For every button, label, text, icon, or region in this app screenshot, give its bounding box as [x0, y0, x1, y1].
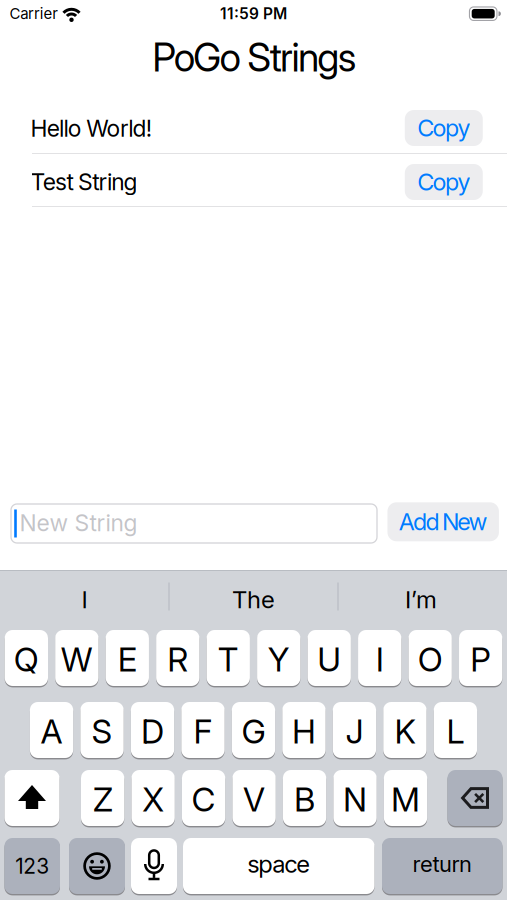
staticText: space: [247, 849, 310, 878]
button[interactable]: O: [408, 630, 452, 686]
button[interactable]: V: [232, 770, 276, 826]
button[interactable]: L: [434, 702, 477, 758]
button[interactable]: M: [384, 770, 427, 826]
staticText: V: [243, 779, 265, 819]
button[interactable]: D: [131, 702, 174, 758]
button[interactable]: Y: [257, 630, 300, 686]
staticText: W: [61, 639, 93, 679]
button[interactable]: The: [173, 571, 333, 627]
staticText: F: [193, 711, 212, 751]
button[interactable]: I’m: [341, 571, 501, 627]
staticText: P: [470, 639, 491, 679]
staticText: A: [40, 711, 62, 751]
button[interactable]: B: [283, 770, 326, 826]
staticText: J: [345, 711, 363, 751]
button[interactable]: I: [358, 630, 401, 686]
staticText: G: [241, 711, 265, 751]
staticText: M: [391, 779, 420, 819]
button[interactable]: J: [333, 702, 376, 758]
staticText: X: [142, 779, 164, 819]
button[interactable]: 123: [4, 838, 60, 894]
staticText: Add New: [399, 508, 488, 536]
staticText: H: [292, 711, 316, 751]
staticText: return: [412, 851, 472, 877]
button[interactable]: K: [383, 702, 427, 758]
staticText: Z: [93, 779, 113, 819]
staticText: E: [118, 639, 137, 679]
staticText: T: [218, 639, 239, 679]
button[interactable]: H: [282, 702, 326, 758]
button[interactable]: Q: [5, 630, 48, 686]
button[interactable]: Dictation: [131, 838, 177, 894]
staticText: Copy: [417, 168, 470, 196]
button[interactable]: I: [4, 571, 164, 627]
staticText: PoGo Strings: [152, 34, 357, 81]
button[interactable]: Add New: [387, 502, 499, 541]
button[interactable]: space: [183, 838, 374, 894]
staticText: 11:59 PM: [220, 4, 287, 23]
button[interactable]: R: [156, 630, 199, 686]
staticText: O: [418, 639, 443, 679]
staticText: L: [446, 711, 464, 751]
button[interactable]: X: [131, 770, 175, 826]
button[interactable]: Copy: [405, 110, 483, 146]
staticText: Carrier: [9, 4, 58, 22]
staticText: Hello World!: [30, 115, 152, 142]
button[interactable]: New String: [11, 504, 377, 543]
staticText: I: [376, 639, 384, 679]
staticText: Test String: [30, 168, 137, 196]
staticText: S: [91, 711, 112, 751]
staticText: New String: [19, 509, 137, 537]
staticText: N: [343, 779, 367, 819]
button[interactable]: E: [106, 630, 149, 686]
staticText: 123: [15, 853, 49, 879]
button[interactable]: return: [382, 838, 502, 894]
staticText: R: [167, 639, 188, 679]
button[interactable]: W: [55, 630, 98, 686]
staticText: Q: [14, 639, 39, 679]
button[interactable]: Delete: [447, 770, 502, 826]
button[interactable]: T: [207, 630, 250, 686]
button[interactable]: Emoji: [69, 838, 125, 894]
button[interactable]: P: [459, 630, 502, 686]
button[interactable]: S: [80, 702, 124, 758]
staticText: U: [317, 639, 341, 679]
staticText: Copy: [417, 114, 470, 142]
button[interactable]: Z: [81, 770, 124, 826]
button[interactable]: N: [333, 770, 377, 826]
staticText: D: [141, 711, 164, 751]
staticText: C: [192, 779, 216, 819]
button[interactable]: Shift: [4, 770, 59, 826]
staticText: Y: [268, 639, 290, 679]
button[interactable]: F: [181, 702, 225, 758]
staticText: K: [394, 711, 415, 751]
staticText: I’m: [405, 585, 437, 614]
button[interactable]: A: [30, 702, 73, 758]
staticText: I: [81, 585, 87, 614]
button[interactable]: Copy: [405, 164, 483, 200]
staticText: B: [294, 779, 315, 819]
button[interactable]: G: [232, 702, 275, 758]
button[interactable]: C: [182, 770, 225, 826]
button[interactable]: U: [308, 630, 351, 686]
staticText: The: [232, 585, 275, 614]
